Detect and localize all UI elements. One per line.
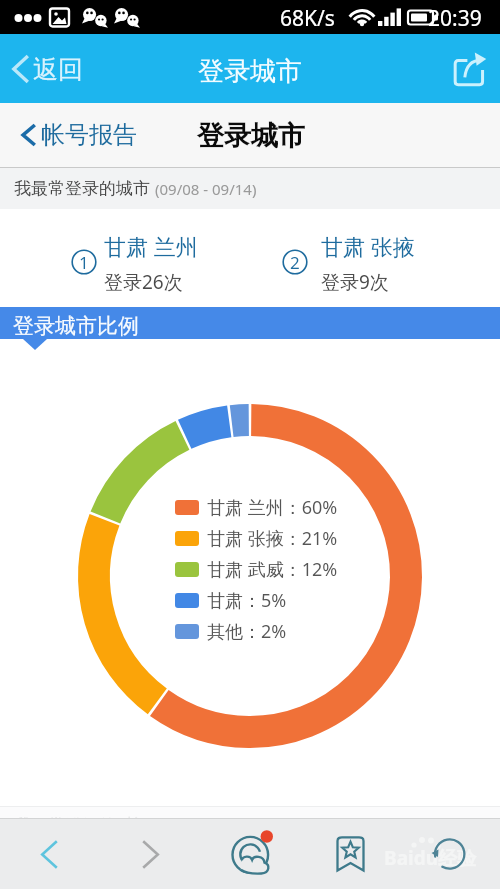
staticText: 1 [79,251,89,274]
staticText: 其他：2% [207,619,287,644]
button[interactable]: 2 [274,221,434,297]
staticText: 登录26次 [104,269,183,295]
staticText: 登录城市 [197,119,305,153]
staticText: 登录城市 [198,55,302,88]
staticText: 甘肃 武威：12% [207,557,338,582]
staticText: (09/08 - 09/14) [155,179,257,199]
staticText: 甘肃 张掖 [321,231,415,261]
staticText: 甘肃 兰州 [104,231,198,261]
staticText: 甘肃 兰州：60% [207,495,338,520]
staticText: 登录城市比例 [13,313,139,339]
staticText: Baidu经验 [384,845,477,871]
button[interactable]: Forward [117,826,183,888]
button[interactable]: Share [445,46,491,88]
staticText: 68K/s [280,4,335,33]
button[interactable]: Bookmark [320,824,380,886]
button[interactable]: 返回 [12,48,83,90]
button[interactable]: Assistant [218,824,282,886]
staticText: 甘肃：5% [207,588,287,613]
staticText: 甘肃 张掖：21% [207,526,338,551]
button[interactable]: Refresh [420,824,480,886]
button[interactable]: 1 [63,221,223,297]
staticText: 我最常登录的城市 [14,178,150,199]
staticText: 帐号报告 [41,120,137,150]
staticText: 20:39 [428,4,482,33]
button[interactable]: 帐号报告 [21,115,137,155]
button[interactable]: Back [16,826,82,888]
staticText: 我最常登录的时间 (09/08 - 09/14) [14,813,270,825]
staticText: 登录9次 [321,269,389,295]
staticText: 2 [290,251,300,274]
staticText: 返回 [33,54,83,85]
